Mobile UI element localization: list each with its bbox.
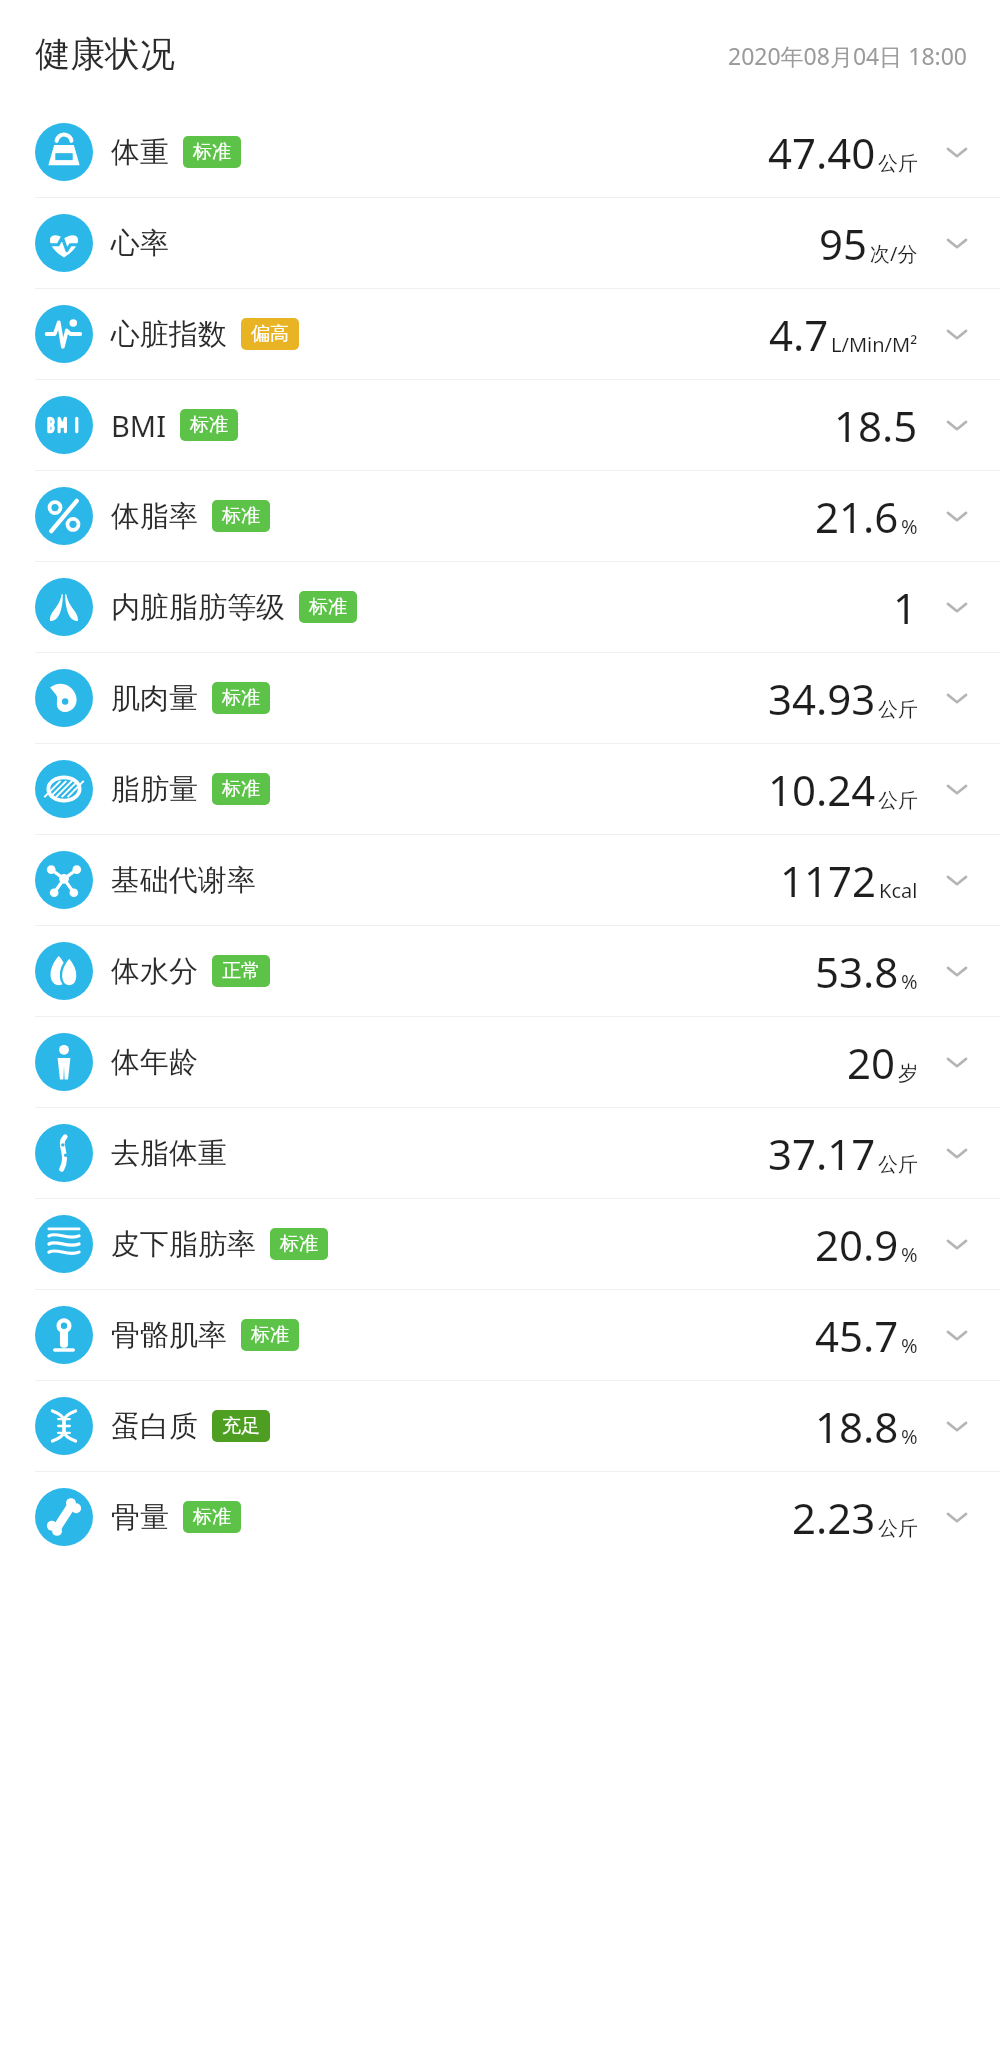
other: 展开 体水分 bbox=[940, 954, 974, 988]
other: 展开 肌肉量 bbox=[940, 681, 974, 715]
staticText: 体重 bbox=[111, 134, 169, 171]
staticText: 45.7 bbox=[815, 1307, 899, 1364]
staticText: 公斤 bbox=[878, 697, 918, 722]
staticText: 标准 bbox=[222, 504, 260, 528]
staticText: 标准 bbox=[193, 1505, 231, 1529]
staticText: 10.24 bbox=[768, 761, 876, 818]
other: 展开 脂肪量 bbox=[940, 772, 974, 806]
button[interactable]: 体水分 bbox=[0, 926, 1000, 1016]
button[interactable]: 脂肪量 bbox=[0, 744, 1000, 834]
staticText: % bbox=[901, 1423, 918, 1450]
staticText: 充足 bbox=[222, 1414, 260, 1438]
other: 展开 去脂体重 bbox=[940, 1136, 974, 1170]
staticText: 标准 bbox=[193, 140, 231, 164]
staticText: 1172 bbox=[780, 852, 877, 909]
other: 展开 皮下脂肪率 bbox=[940, 1227, 974, 1261]
staticText: 53.8 bbox=[815, 943, 899, 1000]
staticText: 18.5 bbox=[834, 397, 918, 454]
staticText: 2.23 bbox=[792, 1489, 876, 1546]
staticText: 蛋白质 bbox=[111, 1408, 198, 1445]
other: 展开 体脂率 bbox=[940, 499, 974, 533]
staticText: 1 bbox=[893, 579, 918, 636]
staticText: 基础代谢率 bbox=[111, 862, 256, 899]
staticText: 健康状况 bbox=[35, 32, 175, 76]
staticText: 骨骼肌率 bbox=[111, 1317, 227, 1354]
staticText: 95 bbox=[819, 215, 868, 272]
button[interactable]: 去脂体重 bbox=[0, 1108, 1000, 1198]
button[interactable]: 肌肉量 bbox=[0, 653, 1000, 743]
button[interactable]: 基础代谢率 bbox=[0, 835, 1000, 925]
staticText: % bbox=[901, 1332, 918, 1359]
staticText: 偏高 bbox=[251, 322, 289, 346]
staticText: 次/分 bbox=[870, 240, 918, 267]
other: 展开 骨量 bbox=[940, 1500, 974, 1534]
staticText: 心率 bbox=[111, 225, 169, 262]
staticText: 正常 bbox=[222, 959, 260, 983]
staticText: 公斤 bbox=[878, 788, 918, 813]
staticText: 21.6 bbox=[815, 488, 899, 545]
button[interactable]: 骨量 bbox=[0, 1472, 1000, 1562]
staticText: 34.93 bbox=[768, 670, 876, 727]
button[interactable]: 皮下脂肪率 bbox=[0, 1199, 1000, 1289]
other: 展开 体年龄 bbox=[940, 1045, 974, 1079]
staticText: % bbox=[901, 968, 918, 995]
staticText: 公斤 bbox=[878, 1516, 918, 1541]
staticText: 标准 bbox=[222, 777, 260, 801]
other: 展开 内脏脂肪等级 bbox=[940, 590, 974, 624]
staticText: 标准 bbox=[280, 1232, 318, 1256]
button[interactable]: BMI bbox=[0, 380, 1000, 470]
staticText: 20.9 bbox=[815, 1216, 899, 1273]
staticText: 标准 bbox=[190, 413, 228, 437]
other: 展开 心率 bbox=[940, 226, 974, 260]
staticText: Kcal bbox=[879, 877, 918, 904]
staticText: BMI bbox=[111, 406, 166, 445]
staticText: 骨量 bbox=[111, 1499, 169, 1536]
button[interactable]: 体脂率 bbox=[0, 471, 1000, 561]
other: 展开 骨骼肌率 bbox=[940, 1318, 974, 1352]
other: 展开 体重 bbox=[940, 135, 974, 169]
staticText: 岁 bbox=[898, 1061, 918, 1086]
staticText: 20 bbox=[847, 1034, 896, 1091]
button[interactable]: 心脏指数 bbox=[0, 289, 1000, 379]
other: 展开 心脏指数 bbox=[940, 317, 974, 351]
staticText: % bbox=[901, 1241, 918, 1268]
staticText: 4.7 bbox=[769, 306, 829, 363]
button[interactable]: 骨骼肌率 bbox=[0, 1290, 1000, 1380]
button[interactable]: 体年龄 bbox=[0, 1017, 1000, 1107]
staticText: 公斤 bbox=[878, 1152, 918, 1177]
button[interactable]: 内脏脂肪等级 bbox=[0, 562, 1000, 652]
staticText: % bbox=[901, 513, 918, 540]
staticText: 标准 bbox=[222, 686, 260, 710]
button[interactable]: 心率 bbox=[0, 198, 1000, 288]
staticText: 体年龄 bbox=[111, 1044, 198, 1081]
staticText: 37.17 bbox=[768, 1125, 876, 1182]
button[interactable]: 蛋白质 bbox=[0, 1381, 1000, 1471]
other: 展开 蛋白质 bbox=[940, 1409, 974, 1443]
staticText: 内脏脂肪等级 bbox=[111, 589, 285, 626]
staticText: 公斤 bbox=[878, 151, 918, 176]
other: 展开 BMI bbox=[940, 408, 974, 442]
staticText: 标准 bbox=[251, 1323, 289, 1347]
staticText: 皮下脂肪率 bbox=[111, 1226, 256, 1263]
staticText: 18.8 bbox=[815, 1398, 899, 1455]
staticText: 肌肉量 bbox=[111, 680, 198, 717]
staticText: 去脂体重 bbox=[111, 1135, 227, 1172]
staticText: 心脏指数 bbox=[111, 316, 227, 353]
staticText: 体脂率 bbox=[111, 498, 198, 535]
staticText: 标准 bbox=[309, 595, 347, 619]
staticText: 脂肪量 bbox=[111, 771, 198, 808]
staticText: L/Min/M² bbox=[831, 331, 918, 358]
staticText: 47.40 bbox=[768, 124, 876, 181]
staticText: 2020年08月04日 18:00 bbox=[728, 40, 968, 71]
button[interactable]: 体重 bbox=[0, 107, 1000, 197]
staticText: 体水分 bbox=[111, 953, 198, 990]
other: 展开 基础代谢率 bbox=[940, 863, 974, 897]
